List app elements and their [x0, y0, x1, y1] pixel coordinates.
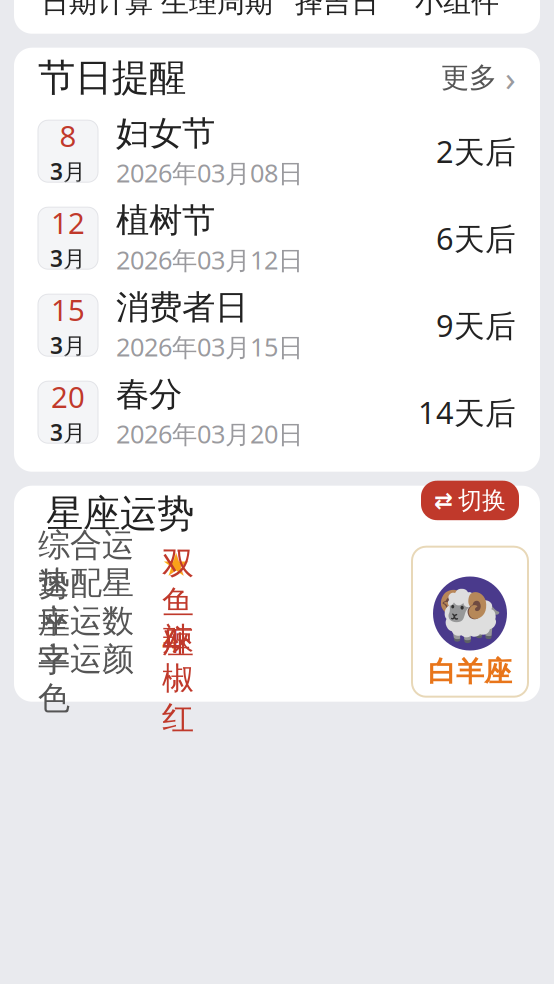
staticText: 12 [51, 203, 85, 242]
button[interactable]: ☻ [157, 0, 277, 20]
staticText: 15 [51, 290, 85, 329]
staticText: 幸运数字 [38, 601, 134, 680]
staticText: 春分 [116, 374, 182, 415]
staticText: 日期计算 [41, 0, 153, 20]
staticText: 2026年03月20日 [116, 417, 303, 450]
staticText: 4 [162, 619, 180, 662]
staticText: 更多 [441, 60, 497, 95]
staticText: 2026年03月15日 [116, 330, 303, 363]
staticText: 3月 [50, 417, 86, 447]
staticText: 节日提醒 [38, 55, 186, 101]
staticText: 辣椒红 [162, 620, 194, 738]
staticText: 妇女节 [116, 113, 215, 154]
staticText: 植树节 [116, 200, 215, 241]
staticText: 14天后 [418, 392, 516, 432]
staticText: 白羊座 [428, 654, 512, 689]
staticText: 择吉日 [295, 0, 379, 20]
staticText: 综合运势 [38, 525, 134, 604]
button[interactable]: 节日提醒 [38, 48, 516, 108]
staticText: 8 [59, 116, 76, 155]
staticText: › [505, 55, 516, 101]
staticText: 2天后 [436, 131, 516, 171]
staticText: 消费者日 [116, 287, 248, 328]
staticText: 3月 [50, 243, 86, 273]
button[interactable]: 15 [38, 282, 516, 369]
staticText: 2026年03月12日 [116, 243, 303, 276]
staticText: 生理周期 [161, 0, 273, 20]
button[interactable]: 12 [38, 195, 516, 282]
button[interactable]: ⊞ [37, 0, 157, 20]
staticText: 切换 [458, 486, 506, 515]
staticText: ⇄ [434, 488, 453, 513]
button[interactable]: ▤ [277, 0, 397, 20]
staticText: 3月 [50, 330, 86, 360]
staticText: 2026年03月08日 [116, 156, 303, 189]
staticText: 20 [51, 377, 85, 416]
staticText: 3月 [50, 156, 86, 186]
staticText: 双鱼座 [162, 544, 194, 662]
staticText: 🐏 [437, 583, 503, 644]
staticText: 速配星座 [38, 563, 134, 642]
button[interactable]: ✿ [397, 0, 517, 20]
staticText: 6天后 [436, 218, 516, 258]
staticText: 幸运颜色 [38, 639, 134, 718]
staticText: ★ [162, 546, 191, 583]
button[interactable]: 切换星座 [400, 542, 540, 702]
button[interactable]: 20 [38, 369, 516, 456]
staticText: 星座运势 [46, 491, 194, 537]
staticText: 小组件 [415, 0, 499, 20]
button[interactable]: 8 [38, 108, 516, 195]
staticText: 9天后 [436, 305, 516, 345]
